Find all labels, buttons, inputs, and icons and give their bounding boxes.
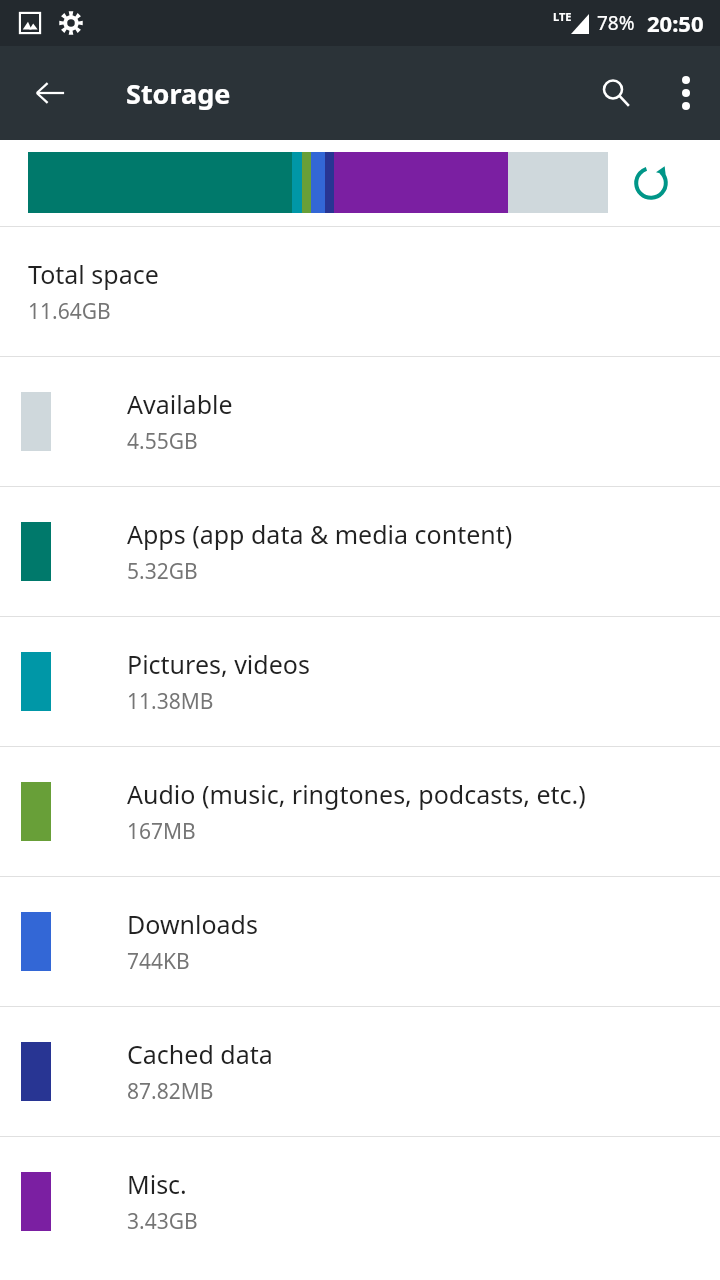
staticText: Storage (126, 75, 231, 112)
button[interactable]: Apps (app data & media content) (0, 487, 720, 616)
staticText: 11.38MB (127, 687, 214, 716)
staticText: 87.82MB (127, 1077, 214, 1106)
button[interactable]: Back (14, 57, 86, 129)
staticText: 744KB (127, 947, 190, 976)
button[interactable]: More options (652, 57, 720, 129)
staticText: 3.43GB (127, 1207, 198, 1236)
button[interactable]: Search (580, 57, 652, 129)
button[interactable]: Downloads (0, 877, 720, 1006)
button[interactable]: Misc. (0, 1137, 720, 1266)
staticText: Available (127, 387, 233, 421)
staticText: 167MB (127, 817, 196, 846)
staticText: Misc. (127, 1167, 187, 1201)
button[interactable]: Available (0, 357, 720, 486)
staticText: 20:50 (647, 8, 704, 38)
staticText: 78% (597, 10, 635, 36)
button[interactable]: Cached data (0, 1007, 720, 1136)
button[interactable]: Total space (0, 227, 720, 356)
staticText: Cached data (127, 1037, 273, 1071)
staticText: 5.32GB (127, 557, 198, 586)
staticText: LTE (553, 9, 572, 24)
staticText: Apps (app data & media content) (127, 517, 513, 551)
staticText: Total space (28, 257, 159, 291)
button[interactable]: Audio (music, ringtones, podcasts, etc.) (0, 747, 720, 876)
staticText: Downloads (127, 907, 258, 941)
staticText: Audio (music, ringtones, podcasts, etc.) (127, 777, 586, 811)
staticText: 11.64GB (28, 297, 111, 326)
staticText: Pictures, videos (127, 647, 310, 681)
staticText: 4.55GB (127, 427, 198, 456)
button[interactable]: Pictures, videos (0, 617, 720, 746)
button[interactable]: Refresh (618, 150, 684, 216)
